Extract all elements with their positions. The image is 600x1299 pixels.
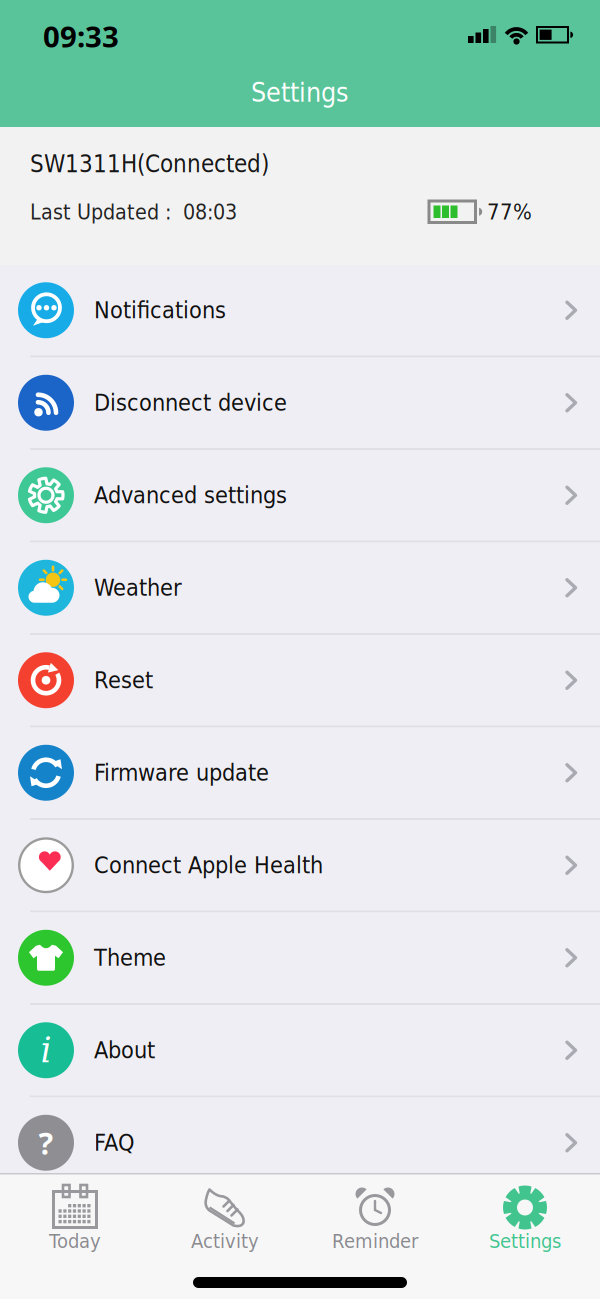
button[interactable]: Notifications — [0, 265, 600, 357]
button[interactable]: Weather — [0, 542, 600, 635]
button[interactable]: Today — [0, 1183, 150, 1253]
staticText: Settings — [489, 1229, 561, 1253]
staticText: Reset — [94, 667, 153, 694]
staticText: Reminder — [332, 1229, 418, 1253]
staticText: Connect Apple Health — [94, 852, 323, 879]
staticText: ? — [38, 1122, 53, 1164]
staticText: Firmware update — [94, 759, 269, 786]
button[interactable]: Connect Apple Health — [0, 820, 600, 912]
staticText: Activity — [191, 1229, 259, 1253]
staticText: About — [94, 1037, 155, 1064]
staticText: Theme — [94, 944, 166, 971]
staticText: Weather — [94, 574, 182, 601]
staticText: SW1311H(Connected) — [30, 150, 269, 178]
button[interactable]: i — [0, 1005, 600, 1097]
staticText: Today — [49, 1229, 101, 1253]
staticText: Notifications — [94, 297, 226, 324]
button[interactable]: Settings — [450, 1183, 600, 1253]
staticText: 09:33 — [43, 16, 119, 56]
button[interactable]: Activity — [150, 1183, 300, 1253]
staticText: Settings — [251, 77, 349, 108]
staticText: 77% — [487, 199, 532, 225]
staticText: Last Updated : 08:03 — [30, 200, 237, 224]
button[interactable]: ? — [0, 1097, 600, 1190]
staticText: Advanced settings — [94, 482, 287, 509]
button[interactable]: Advanced settings — [0, 450, 600, 542]
staticText: i — [40, 1030, 51, 1070]
button[interactable]: Theme — [0, 912, 600, 1005]
button[interactable]: Firmware update — [0, 727, 600, 820]
button[interactable]: Reset — [0, 635, 600, 727]
staticText: FAQ — [94, 1129, 135, 1156]
button[interactable]: Disconnect device — [0, 357, 600, 450]
staticText: Disconnect device — [94, 389, 287, 416]
button[interactable]: Reminder — [300, 1183, 450, 1253]
